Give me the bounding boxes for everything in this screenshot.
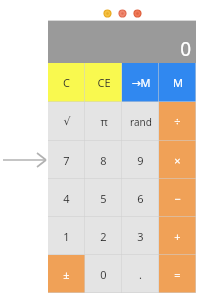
button[interactable]: = (159, 255, 196, 293)
button[interactable]: 4 (48, 179, 85, 217)
staticText: ± (63, 267, 70, 282)
staticText: →M (131, 75, 151, 90)
staticText: ÷ (174, 114, 181, 129)
button[interactable]: √ (48, 102, 85, 141)
staticText: 3 (137, 229, 144, 244)
button[interactable]: M (159, 63, 196, 102)
button[interactable]: 9 (122, 141, 159, 179)
staticText: √ (63, 115, 71, 128)
staticText: π (100, 114, 108, 129)
button[interactable]: CE (85, 63, 122, 102)
staticText: × (174, 153, 181, 168)
button[interactable]: 5 (85, 179, 122, 217)
button[interactable]: 3 (122, 217, 159, 255)
button[interactable]: Minimize (104, 10, 111, 17)
button[interactable]: 0 (85, 255, 122, 293)
staticText: = (174, 267, 181, 282)
button[interactable]: − (159, 179, 196, 217)
button[interactable]: 8 (85, 141, 122, 179)
button[interactable]: + (159, 217, 196, 255)
staticText: CE (97, 75, 111, 90)
button[interactable]: C (48, 63, 85, 102)
staticText: 9 (137, 153, 144, 168)
staticText: 2 (100, 229, 107, 244)
staticText: 4 (63, 191, 70, 206)
staticText: − (174, 191, 181, 206)
button[interactable]: Close (134, 10, 141, 17)
staticText: 7 (63, 153, 70, 168)
button[interactable]: × (159, 141, 196, 179)
button[interactable]: 1 (48, 217, 85, 255)
button[interactable]: rand (122, 102, 159, 141)
button[interactable]: Maximize (119, 10, 126, 17)
button[interactable]: 7 (48, 141, 85, 179)
button[interactable]: . (122, 255, 159, 293)
staticText: 0 (180, 36, 191, 62)
staticText: 5 (100, 191, 107, 206)
staticText: 1 (63, 229, 70, 244)
button[interactable]: π (85, 102, 122, 141)
staticText: . (139, 267, 142, 282)
button[interactable]: ÷ (159, 102, 196, 141)
staticText: rand (130, 115, 152, 129)
staticText: 6 (137, 191, 144, 206)
staticText: C (63, 75, 70, 90)
staticText: 0 (100, 267, 107, 282)
button[interactable]: 2 (85, 217, 122, 255)
button[interactable]: ± (48, 255, 85, 293)
button[interactable]: →M (122, 63, 159, 102)
staticText: 8 (100, 153, 107, 168)
staticText: M (173, 75, 183, 90)
button[interactable]: 6 (122, 179, 159, 217)
staticText: + (174, 229, 181, 244)
